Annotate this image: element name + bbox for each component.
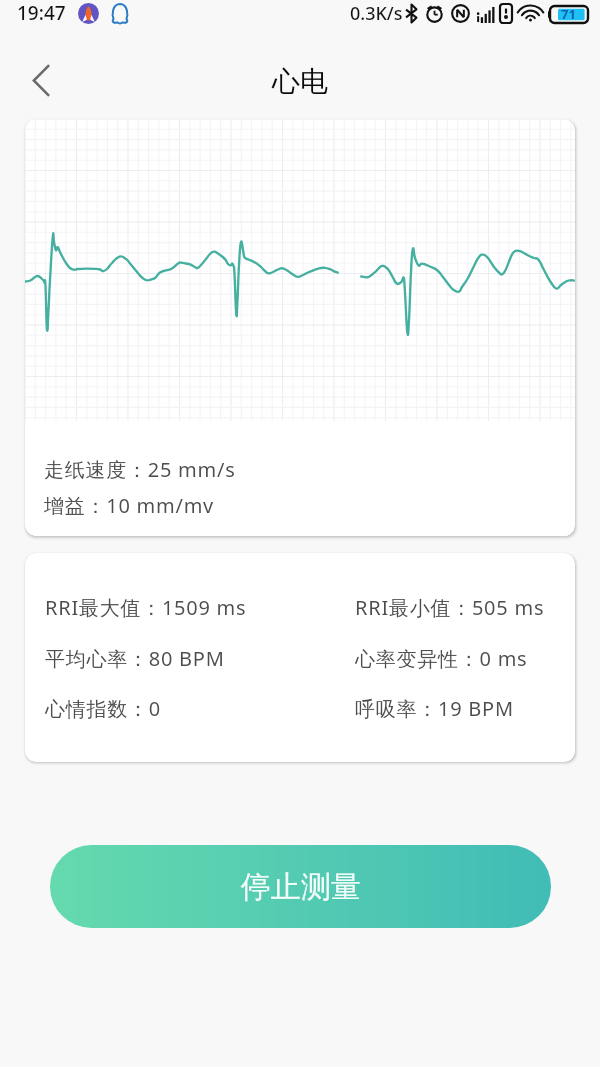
staticText: 停止测量 <box>241 868 361 906</box>
button[interactable]: 停止测量 <box>50 845 551 928</box>
staticText: 心电 <box>272 64 328 99</box>
staticText: 19:47 <box>17 0 66 26</box>
staticText: 呼吸率：19 BPM <box>355 695 514 722</box>
staticText: RRI最大值：1509 ms <box>45 594 247 621</box>
staticText: 71 <box>561 5 576 23</box>
staticText: 增益：10 mm/mv <box>44 492 215 519</box>
staticText: 平均心率：80 BPM <box>45 645 225 672</box>
staticText: 心率变异性：0 ms <box>355 645 528 672</box>
staticText: RRI最小值：505 ms <box>355 594 545 621</box>
staticText: 0.3K/s <box>350 1 403 26</box>
button[interactable]: Back <box>17 56 65 104</box>
staticText: 心情指数：0 <box>45 695 161 722</box>
staticText: 走纸速度：25 mm/s <box>44 456 236 483</box>
